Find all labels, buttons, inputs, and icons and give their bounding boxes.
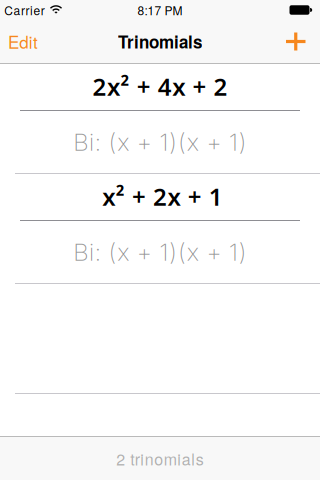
button[interactable]: 2x² + 4x + 2 [0,64,320,173]
staticText: Edit [8,29,38,54]
staticText: Carrier [4,1,45,19]
button[interactable]: Add [271,20,320,63]
staticText: 2x² + 4x + 2 [92,70,227,103]
staticText: Trinomials [118,29,202,54]
staticText: x² + 2x + 1 [102,180,223,213]
staticText: 2 trinomials [116,447,204,470]
button[interactable]: x² + 2x + 1 [0,174,320,283]
button[interactable]: Edit [0,20,46,63]
staticText: Bi: (x + 1)(x + 1) [73,127,247,156]
staticText: Bi: (x + 1)(x + 1) [73,237,247,266]
staticText: 8:17 PM [137,1,182,19]
